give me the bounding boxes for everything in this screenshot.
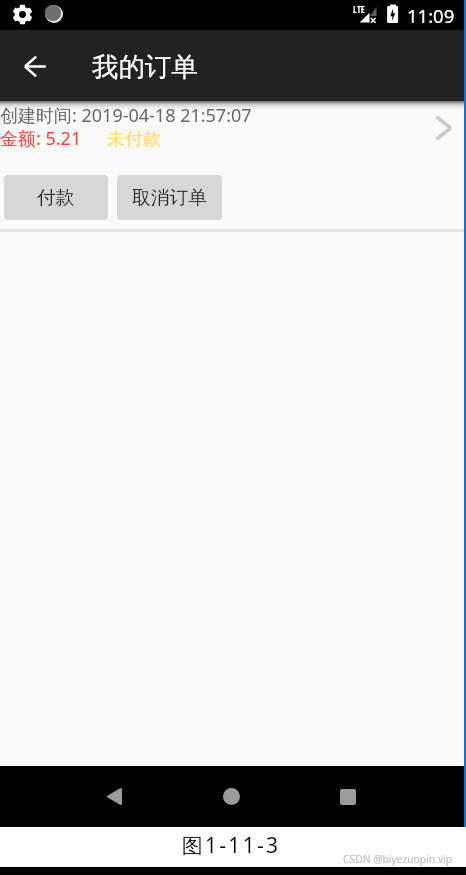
staticText: 创建时间: 2019-04-18 21:57:07 [0, 103, 252, 128]
staticText: 未付款 [107, 128, 161, 151]
staticText: 我的订单 [92, 50, 198, 83]
button[interactable]: Recent apps [327, 776, 368, 817]
staticText: 图1-11-3 [0, 831, 464, 860]
button[interactable]: Back [94, 776, 135, 817]
button[interactable]: Home [211, 776, 252, 817]
staticText: 取消订单 [132, 186, 208, 210]
staticText: CSDN @biyezuopin.vip [343, 852, 453, 866]
button[interactable]: 取消订单 [117, 175, 222, 220]
button[interactable]: Back [12, 43, 58, 89]
staticText: 金额: 5.21 [0, 126, 82, 151]
button[interactable]: 付款 [4, 175, 108, 220]
staticText: 11:09 [407, 3, 455, 28]
staticText: 付款 [37, 186, 75, 210]
button[interactable]: Open order detail [430, 115, 456, 141]
